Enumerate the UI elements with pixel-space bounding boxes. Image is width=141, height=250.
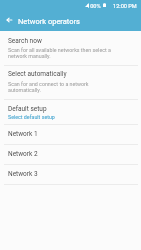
staticText: Default setup bbox=[8, 105, 47, 113]
staticText: Scan for and connect to a network bbox=[8, 81, 89, 87]
staticText: 100% bbox=[87, 3, 101, 10]
staticText: Select automatically bbox=[8, 70, 67, 78]
staticText: Select default setup bbox=[8, 114, 55, 120]
button[interactable]: Search now bbox=[0, 31, 141, 65]
button[interactable]: Network 2 bbox=[0, 144, 141, 164]
staticText: network manually. bbox=[8, 53, 51, 59]
staticText: Network 1 bbox=[8, 130, 38, 138]
staticText: Search now bbox=[8, 37, 42, 45]
button[interactable]: Navigate up bbox=[1, 12, 18, 30]
staticText: automatically. bbox=[8, 87, 41, 93]
button[interactable]: Network 1 bbox=[0, 124, 141, 144]
staticText: Network operators bbox=[18, 17, 80, 26]
button[interactable]: Default setup bbox=[0, 99, 141, 125]
staticText: Network 3 bbox=[8, 170, 38, 178]
staticText: Scan for all available networks then sel… bbox=[8, 47, 111, 53]
button[interactable]: Network 3 bbox=[0, 164, 141, 184]
button[interactable]: Select automatically bbox=[0, 65, 141, 99]
staticText: 12:00 PM bbox=[113, 3, 137, 10]
staticText: Network 2 bbox=[8, 150, 38, 158]
